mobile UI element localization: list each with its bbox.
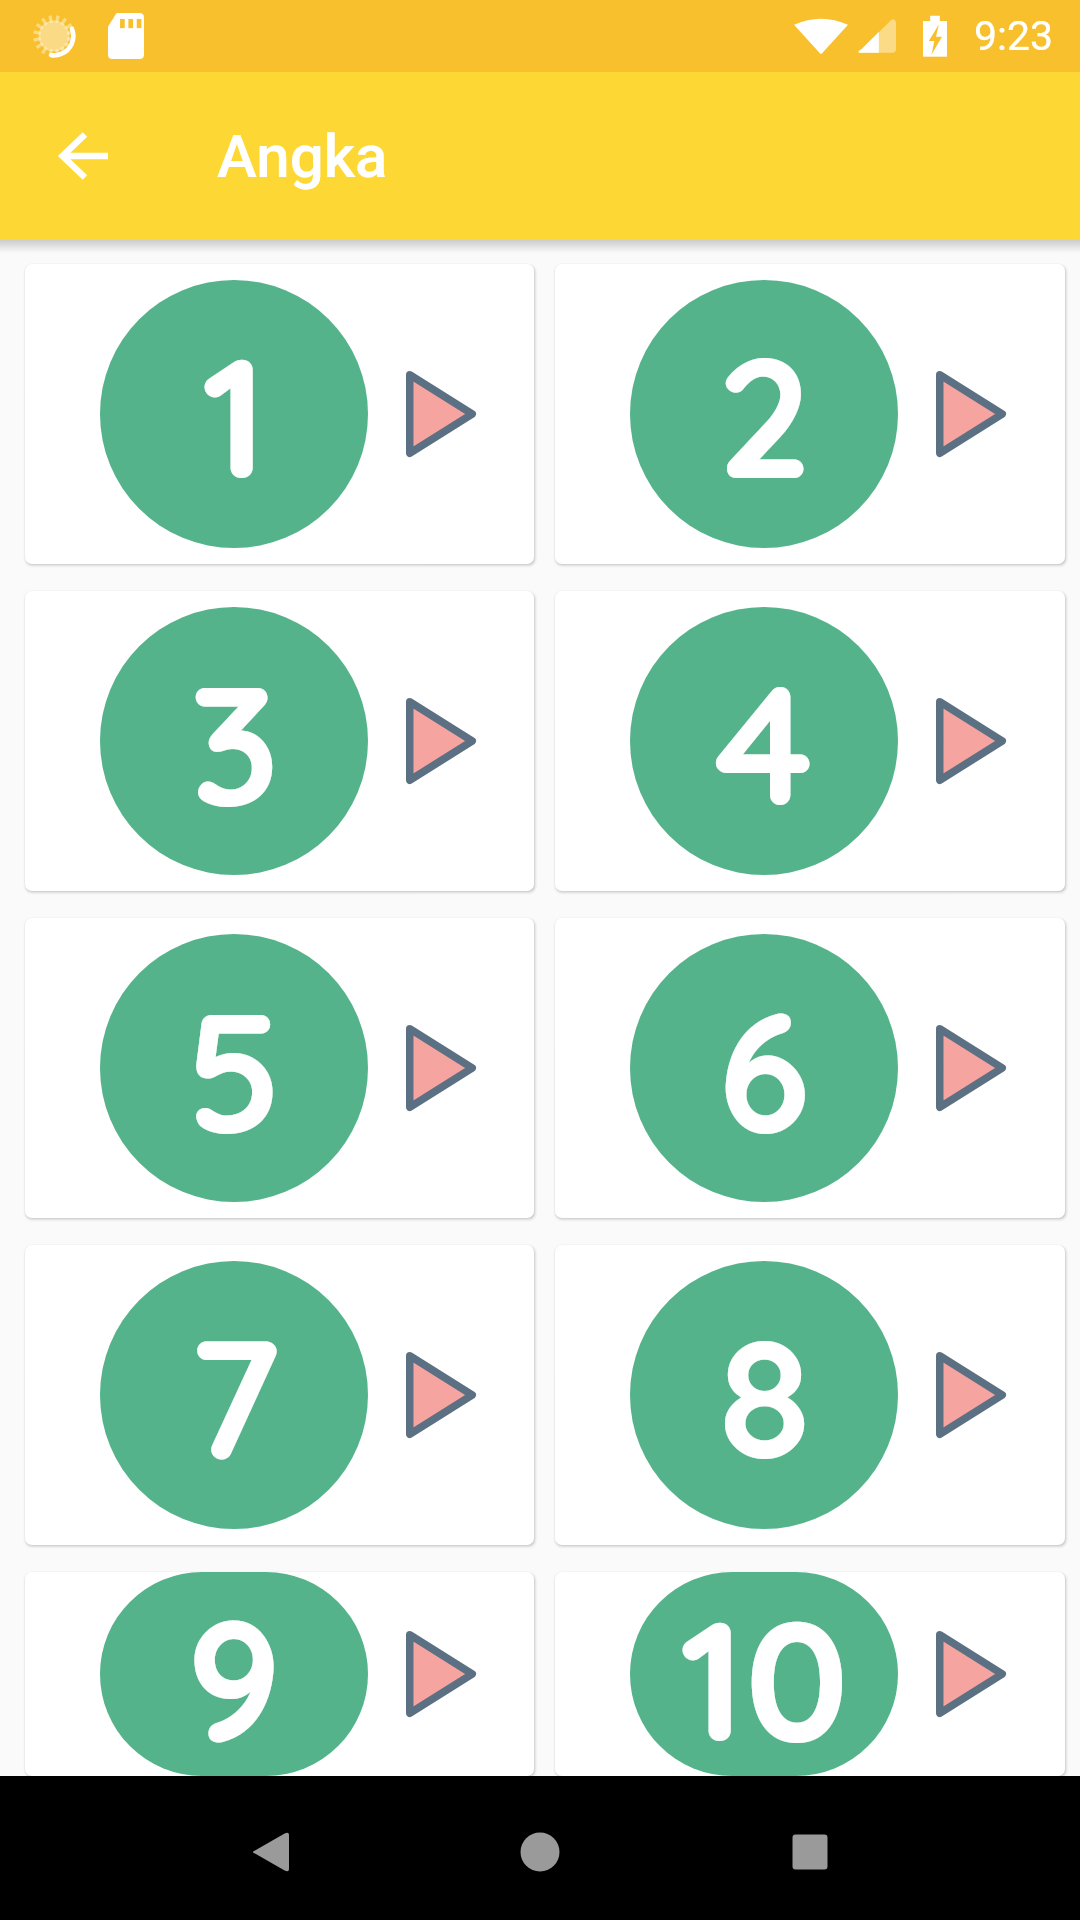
staticText: 1 [201,309,267,520]
staticText: 4 [714,636,814,847]
button[interactable]: Back [36,108,132,204]
staticText: 2 [716,309,813,520]
button[interactable]: 7 [25,1245,534,1545]
staticText: 9 [186,1572,282,1776]
button[interactable]: 1 [25,264,534,564]
other: Play 1 [406,371,476,457]
button[interactable]: 3 [25,591,534,891]
button[interactable]: 9 [25,1572,534,1776]
staticText: 5 [185,963,283,1174]
button[interactable]: Recents [720,1783,900,1920]
other: Play 8 [936,1352,1006,1438]
button[interactable]: 2 [555,264,1065,564]
staticText: 9:23 [974,12,1054,60]
button[interactable]: Back [180,1783,360,1920]
other: Play 9 [406,1631,476,1717]
button[interactable]: 10 [555,1572,1065,1776]
staticText: 3 [189,636,280,847]
other: Play 6 [936,1025,1006,1111]
button[interactable]: 5 [25,918,534,1218]
other: Play 7 [406,1352,476,1438]
button[interactable]: 6 [555,918,1065,1218]
staticText: 8 [718,1290,811,1501]
other: Play 5 [406,1025,476,1111]
staticText: 6 [717,963,811,1174]
other: Play 2 [936,371,1006,457]
button[interactable]: 4 [555,591,1065,891]
staticText: Angka [217,121,388,191]
staticText: 7 [188,1290,281,1501]
other: Play 4 [936,698,1006,784]
staticText: 10 [679,1572,849,1776]
other: Play 3 [406,698,476,784]
button[interactable]: 8 [555,1245,1065,1545]
other: Play 10 [936,1631,1006,1717]
button[interactable]: Home [450,1783,630,1920]
